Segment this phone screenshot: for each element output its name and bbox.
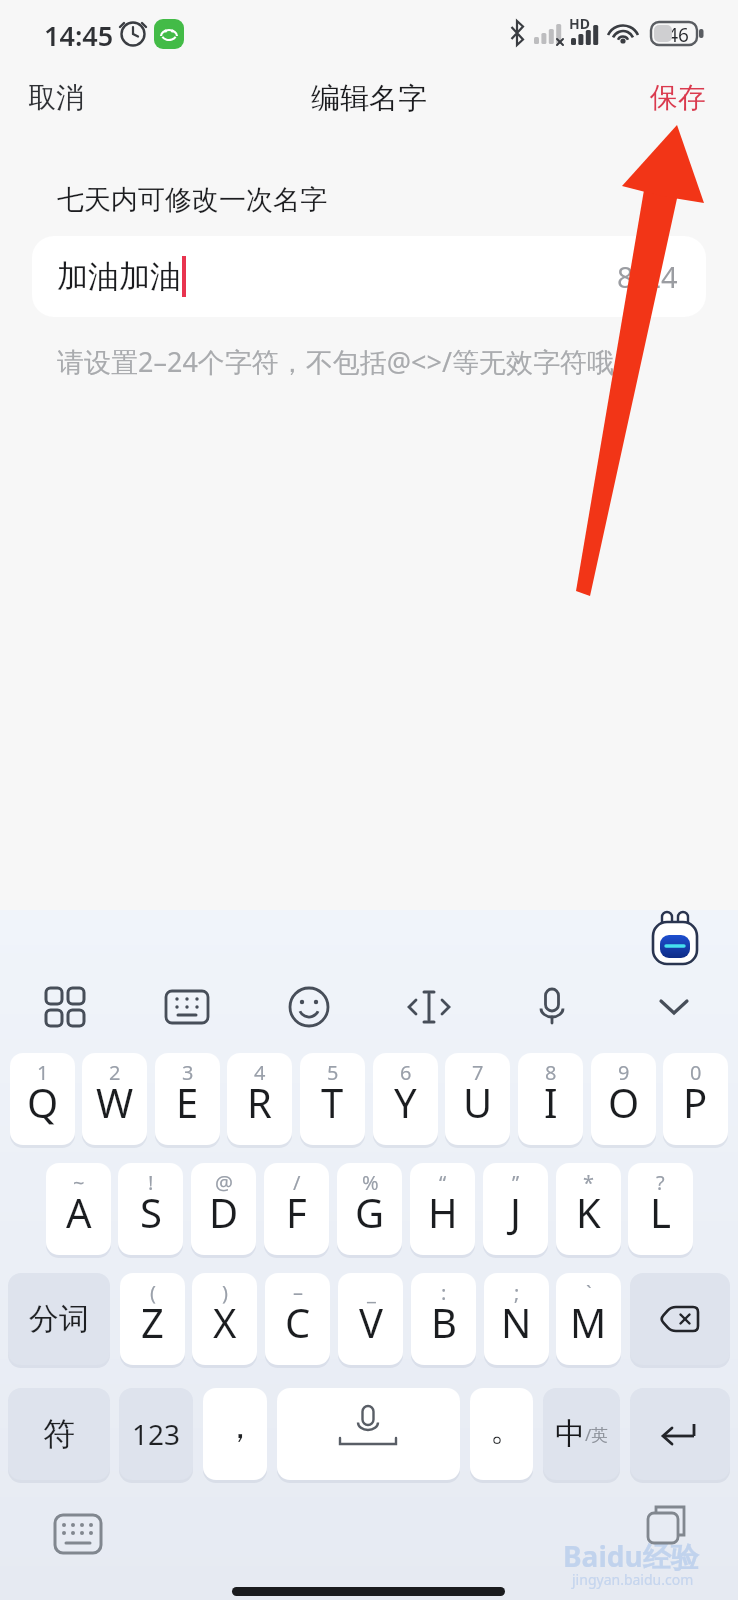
button[interactable]: ” xyxy=(483,1163,548,1255)
staticText: G xyxy=(355,1185,385,1239)
button[interactable] xyxy=(630,1388,730,1480)
button[interactable]: 4 xyxy=(227,1053,292,1145)
staticText: 加油加油 xyxy=(57,257,181,296)
button[interactable]: * xyxy=(556,1163,621,1255)
staticText: 保存 xyxy=(650,80,706,115)
button[interactable] xyxy=(35,977,95,1037)
button[interactable]: _ xyxy=(338,1273,403,1365)
button[interactable]: ? xyxy=(628,1163,693,1255)
staticText: : xyxy=(441,1279,447,1306)
button[interactable]: 5 xyxy=(300,1053,365,1145)
staticText: T xyxy=(321,1075,344,1129)
button[interactable]: 7 xyxy=(445,1053,510,1145)
staticText: @ xyxy=(215,1169,233,1196)
staticText: D xyxy=(209,1185,239,1239)
staticText: 中 xyxy=(555,1415,585,1453)
button[interactable] xyxy=(399,977,459,1037)
staticText: O xyxy=(608,1075,640,1129)
staticText: ) xyxy=(222,1279,228,1306)
staticText: 请设置2–24个字符，不包括@<>/等无效字符哦 xyxy=(57,343,615,380)
button[interactable] xyxy=(648,910,704,966)
button[interactable]: ( xyxy=(120,1273,185,1365)
staticText: 46 xyxy=(661,22,695,48)
button[interactable]: 取消 xyxy=(20,78,100,122)
staticText: H xyxy=(428,1185,458,1239)
staticText: J xyxy=(510,1185,521,1239)
staticText: / xyxy=(293,1169,301,1196)
button[interactable]: : xyxy=(411,1273,476,1365)
staticText: Y xyxy=(394,1075,417,1129)
button[interactable]: ~ xyxy=(46,1163,111,1255)
staticText: 取消 xyxy=(28,80,84,115)
staticText: 。 xyxy=(490,1407,524,1450)
button[interactable]: 符 xyxy=(8,1388,110,1480)
staticText: ; xyxy=(514,1279,520,1306)
staticText: 9 xyxy=(618,1059,630,1086)
button[interactable]: 9 xyxy=(591,1053,656,1145)
staticText: 七天内可修改一次名字 xyxy=(57,183,327,217)
staticText: /英 xyxy=(585,1423,609,1446)
button[interactable]: ; xyxy=(484,1273,549,1365)
button[interactable] xyxy=(279,977,339,1037)
staticText: U xyxy=(463,1075,493,1129)
button[interactable] xyxy=(644,977,704,1037)
staticText: 8 xyxy=(545,1059,557,1086)
staticText: R xyxy=(247,1075,272,1129)
staticText: B xyxy=(431,1295,457,1349)
button[interactable]: 加油加油 xyxy=(32,236,706,317)
staticText: 8/24 xyxy=(617,257,678,296)
staticText: ~ xyxy=(73,1169,85,1196)
button[interactable]: 分词 xyxy=(8,1273,110,1365)
button[interactable]: 8 xyxy=(518,1053,583,1145)
button[interactable]: 中 xyxy=(543,1388,620,1480)
button[interactable]: “ xyxy=(410,1163,475,1255)
button[interactable]: 2 xyxy=(82,1053,147,1145)
staticText: 3 xyxy=(182,1059,194,1086)
button[interactable]: 1 xyxy=(10,1053,75,1145)
button[interactable]: 6 xyxy=(373,1053,438,1145)
staticText: ” xyxy=(512,1169,520,1196)
staticText: 123 xyxy=(132,1415,181,1453)
staticText: M xyxy=(570,1295,607,1349)
staticText: 0 xyxy=(690,1059,702,1086)
button[interactable]: ! xyxy=(118,1163,183,1255)
staticText: ? xyxy=(656,1169,665,1196)
button[interactable]: / xyxy=(264,1163,329,1255)
staticText: K xyxy=(576,1185,601,1239)
button[interactable]: ) xyxy=(192,1273,257,1365)
button[interactable] xyxy=(277,1388,460,1480)
button[interactable]: @ xyxy=(191,1163,256,1255)
staticText: ( xyxy=(150,1279,156,1306)
staticText: ! xyxy=(148,1169,154,1196)
staticText: ` xyxy=(586,1279,592,1306)
staticText: 4 xyxy=(254,1059,266,1086)
button[interactable]: 。 xyxy=(470,1388,533,1480)
button[interactable] xyxy=(50,1508,106,1560)
staticText: _ xyxy=(367,1279,376,1306)
staticText: I xyxy=(544,1075,558,1129)
button[interactable]: 保存 xyxy=(642,78,722,122)
button[interactable] xyxy=(522,977,582,1037)
button[interactable]: ， xyxy=(203,1388,267,1480)
button[interactable]: ` xyxy=(556,1273,621,1365)
staticText: Z xyxy=(141,1295,164,1349)
staticText: N xyxy=(501,1295,532,1349)
staticText: S xyxy=(140,1185,162,1239)
button[interactable]: % xyxy=(337,1163,402,1255)
button[interactable]: – xyxy=(265,1273,330,1365)
staticText: 14:45 xyxy=(44,17,114,54)
button[interactable] xyxy=(157,977,217,1037)
staticText: 符 xyxy=(43,1414,75,1454)
button[interactable]: 123 xyxy=(119,1388,193,1480)
staticText: 7 xyxy=(472,1059,484,1086)
button[interactable]: 3 xyxy=(155,1053,220,1145)
button[interactable]: 0 xyxy=(663,1053,728,1145)
button[interactable] xyxy=(640,1502,692,1554)
staticText: HD xyxy=(569,14,590,33)
staticText: ， xyxy=(223,1405,257,1448)
staticText: L xyxy=(650,1185,671,1239)
staticText: Q xyxy=(27,1075,59,1129)
button[interactable] xyxy=(630,1273,730,1365)
staticText: Baidu经验 xyxy=(563,1537,699,1575)
staticText: W xyxy=(96,1075,134,1129)
